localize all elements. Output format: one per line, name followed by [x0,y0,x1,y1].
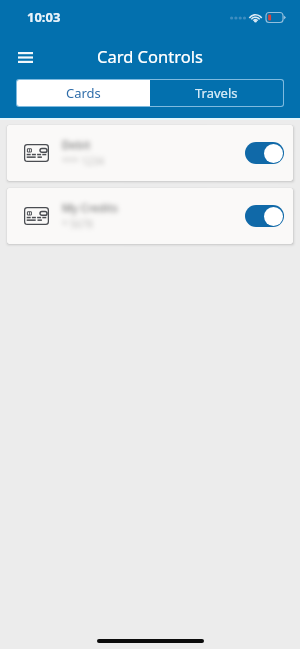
staticText: Cards [66,84,101,102]
button[interactable]: Card enabled toggle [245,205,284,227]
staticText: My Credits [62,200,118,215]
button[interactable]: Debit [7,125,293,181]
button[interactable]: Open navigation menu [10,42,40,72]
staticText: Debit [62,137,91,152]
staticText: * 5678 [62,217,93,231]
button[interactable]: My Credits [7,188,293,244]
button[interactable]: Cards [17,80,150,106]
staticText: Card Controls [97,45,203,67]
staticText: Travels [195,84,238,102]
staticText: *** 1234 [62,154,105,168]
button[interactable]: Travels [150,80,283,106]
button[interactable]: Card enabled toggle [245,142,284,164]
staticText: 10:03 [27,8,61,26]
